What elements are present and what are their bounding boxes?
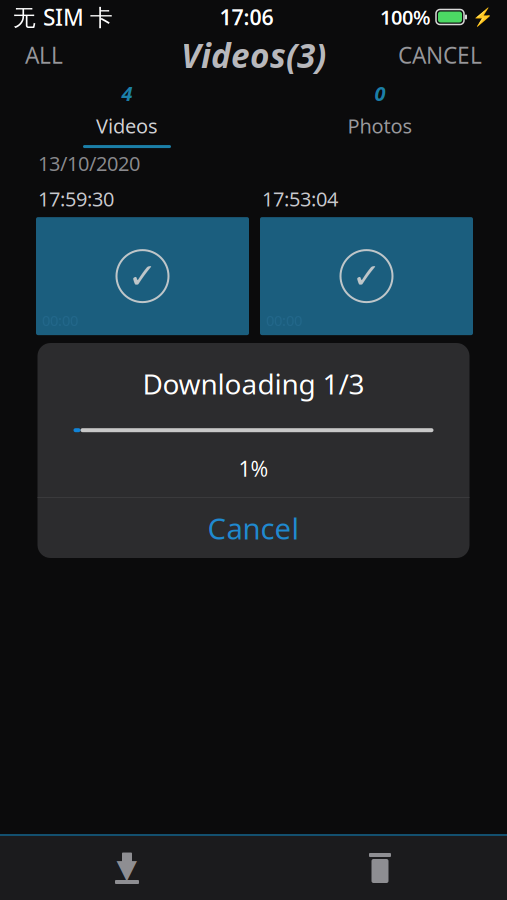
button[interactable]: Download (0, 836, 253, 900)
button[interactable]: 17:53:04 (260, 186, 473, 335)
staticText: 100% (380, 4, 431, 30)
button[interactable]: ALL (11, 31, 77, 79)
staticText: ✓ (128, 256, 157, 296)
staticText: 0 (374, 80, 385, 106)
staticText: Videos(3) (181, 33, 326, 77)
button[interactable]: CANCEL (384, 31, 496, 79)
staticText: ▼ (116, 854, 137, 884)
staticText: CANCEL (398, 40, 482, 70)
button[interactable]: 0 (253, 72, 506, 148)
staticText: Cancel (207, 508, 299, 547)
staticText: ⚡ (472, 7, 494, 27)
button[interactable]: 17:59:30 (36, 186, 249, 335)
staticText: 无 SIM 卡 (13, 2, 113, 32)
button[interactable]: 4 (0, 72, 253, 148)
staticText: Photos (347, 112, 412, 139)
staticText: 13/10/2020 (38, 150, 140, 177)
staticText: ✓ (352, 256, 381, 296)
staticText: 00:00 (42, 311, 78, 330)
staticText: 17:06 (219, 3, 273, 31)
staticText: 1% (238, 454, 268, 482)
staticText: 17:53:04 (262, 186, 338, 212)
staticText: Downloading 1/3 (142, 365, 364, 402)
staticText: 17:59:30 (38, 186, 114, 212)
staticText: 4 (121, 80, 132, 106)
staticText: 00:00 (266, 311, 302, 330)
button[interactable]: Cancel (37, 498, 469, 558)
staticText: ALL (25, 40, 63, 70)
staticText: Videos (96, 112, 158, 139)
button[interactable]: Delete (253, 836, 506, 900)
